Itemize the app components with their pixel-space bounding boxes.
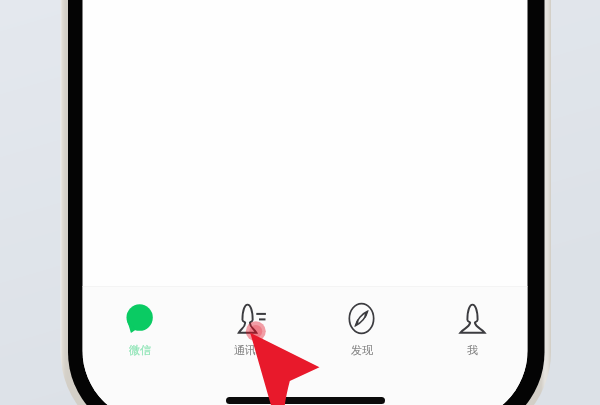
staticText: 通讯录 <box>234 343 267 356</box>
staticText: 我 <box>467 343 478 356</box>
button[interactable]: Me <box>417 286 528 356</box>
button[interactable]: Discover <box>306 286 417 356</box>
staticText: 发现 <box>351 343 373 356</box>
button[interactable]: WeChat <box>83 286 195 356</box>
button[interactable]: Contacts <box>195 286 306 356</box>
staticText: 微信 <box>129 343 151 356</box>
